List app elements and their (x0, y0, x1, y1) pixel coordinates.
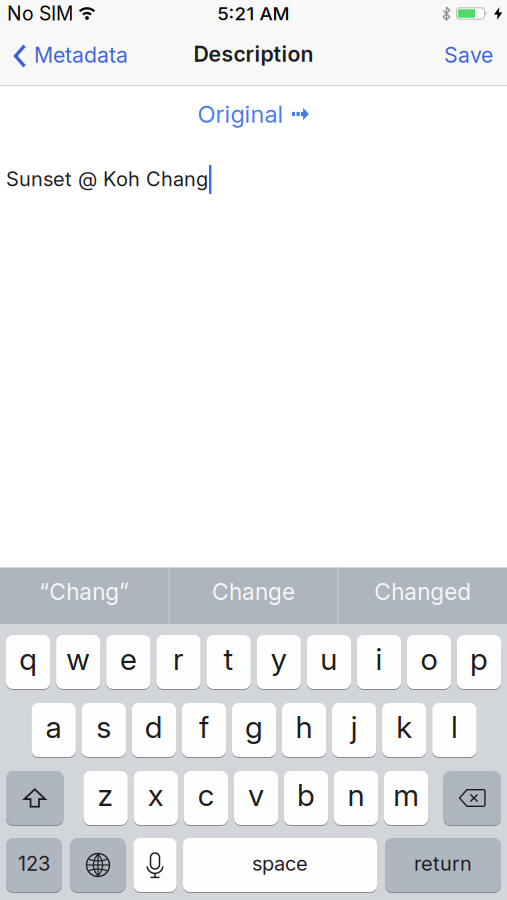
button[interactable]: 123 (6, 838, 62, 892)
button[interactable]: “Chang” (0, 567, 168, 624)
button[interactable]: n (334, 771, 378, 825)
button[interactable]: o (407, 635, 451, 689)
staticText: b (297, 777, 315, 813)
button[interactable]: s (81, 703, 126, 757)
button[interactable]: l (432, 703, 477, 757)
staticText: u (320, 641, 337, 677)
button[interactable]: r (156, 635, 201, 689)
button[interactable]: g (232, 703, 276, 757)
button[interactable]: q (6, 635, 50, 689)
button[interactable]: h (282, 703, 326, 757)
staticText: s (96, 709, 111, 745)
staticText: p (470, 641, 488, 677)
staticText: “Chang” (39, 578, 129, 605)
button[interactable]: f (182, 703, 226, 757)
button[interactable]: Delete (443, 771, 501, 825)
button[interactable]: x (133, 771, 178, 825)
staticText: Metadata (34, 42, 128, 68)
button[interactable]: Changed (338, 567, 507, 624)
staticText: Sunset @ Koh Chang (6, 167, 208, 191)
staticText: z (98, 777, 114, 813)
button[interactable]: b (284, 771, 328, 825)
staticText: a (46, 709, 62, 745)
staticText: No SIM (7, 2, 73, 25)
button[interactable]: t (206, 635, 251, 689)
button[interactable]: j (332, 703, 376, 757)
staticText: x (148, 777, 164, 813)
button[interactable]: i (357, 635, 401, 689)
button[interactable]: Original (197, 98, 309, 130)
staticText: l (451, 709, 458, 745)
button[interactable]: return (385, 838, 501, 892)
staticText: n (348, 777, 365, 813)
staticText: j (351, 709, 358, 745)
button[interactable]: Metadata (0, 43, 128, 69)
staticText: c (198, 777, 214, 813)
button[interactable]: Shift (6, 771, 63, 825)
staticText: 5:21 AM (217, 2, 289, 25)
staticText: space (252, 851, 308, 876)
staticText: h (296, 709, 313, 745)
button[interactable]: v (234, 771, 278, 825)
button[interactable]: e (106, 635, 151, 689)
staticText: y (271, 641, 287, 677)
staticText: m (393, 777, 419, 813)
button[interactable]: c (184, 771, 228, 825)
staticText: d (145, 709, 163, 745)
button[interactable]: y (256, 635, 301, 689)
button[interactable]: k (382, 703, 426, 757)
staticText: f (199, 709, 209, 745)
button[interactable]: w (56, 635, 100, 689)
button[interactable]: d (132, 703, 176, 757)
staticText: v (248, 777, 264, 813)
staticText: g (245, 709, 263, 745)
button[interactable]: a (31, 703, 76, 757)
button[interactable]: m (384, 771, 428, 825)
button[interactable]: Change (169, 567, 337, 624)
staticText: w (66, 641, 90, 677)
staticText: r (173, 641, 184, 677)
button[interactable]: space (183, 838, 377, 892)
staticText: Save (444, 42, 493, 68)
staticText: Change (212, 578, 295, 605)
staticText: o (420, 641, 437, 677)
staticText: i (375, 641, 382, 677)
button[interactable]: Next keyboard (70, 838, 126, 892)
staticText: Changed (374, 578, 471, 605)
staticText: Description (193, 41, 313, 67)
staticText: k (396, 709, 412, 745)
staticText: Original (197, 100, 283, 128)
staticText: e (120, 641, 137, 677)
staticText: return (414, 851, 472, 876)
button[interactable]: Dictate (133, 838, 177, 892)
staticText: q (19, 641, 37, 677)
button[interactable]: Save (444, 43, 507, 69)
staticText: t (224, 641, 234, 677)
button[interactable]: z (83, 771, 128, 825)
button[interactable]: u (307, 635, 351, 689)
button[interactable]: p (457, 635, 501, 689)
staticText: 123 (18, 851, 50, 876)
